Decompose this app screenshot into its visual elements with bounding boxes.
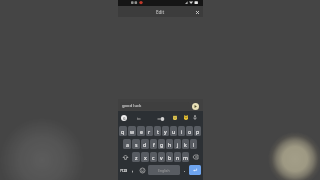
button[interactable]: Send	[192, 103, 199, 110]
staticText: m	[183, 154, 188, 161]
staticText: w	[130, 128, 135, 135]
button[interactable]: Emoji	[184, 115, 188, 120]
button[interactable]: f	[150, 139, 157, 149]
staticText: a	[126, 141, 129, 148]
staticText: f	[153, 141, 155, 148]
staticText: c	[152, 154, 155, 161]
button[interactable]: q	[119, 126, 127, 136]
staticText: i	[181, 128, 183, 135]
button[interactable]: Voice input	[193, 115, 197, 120]
button[interactable]: r	[146, 126, 153, 136]
button[interactable]: g	[158, 139, 165, 149]
staticText: g	[160, 141, 164, 148]
button[interactable]: Close	[192, 7, 202, 17]
staticText: G	[123, 116, 126, 121]
staticText: d	[143, 141, 147, 148]
button[interactable]: l	[190, 139, 197, 149]
staticText: u	[172, 128, 176, 135]
button[interactable]: e	[137, 126, 145, 136]
staticText: v	[160, 154, 163, 161]
staticText: o	[188, 128, 192, 135]
button[interactable]: h	[166, 139, 173, 149]
staticText: s	[135, 141, 138, 148]
button[interactable]: Emoji keyboard	[137, 165, 147, 175]
staticText: n	[176, 154, 180, 161]
staticText: y	[164, 128, 167, 135]
staticText: Edit	[156, 9, 165, 15]
staticText: z	[135, 154, 138, 161]
button[interactable]: w	[128, 126, 136, 136]
button[interactable]: o	[186, 126, 193, 136]
staticText: t	[157, 128, 159, 135]
staticText: x	[144, 154, 147, 161]
staticText: good luck	[122, 103, 142, 109]
button[interactable]: Shift	[119, 152, 131, 162]
button[interactable]: Backspace	[190, 152, 201, 162]
button[interactable]: t	[154, 126, 161, 136]
button[interactable]: k	[182, 139, 189, 149]
staticText: to	[137, 116, 141, 121]
button[interactable]: v	[158, 152, 165, 162]
staticText: l	[193, 141, 195, 148]
button[interactable]: Period	[181, 165, 188, 175]
staticText: r	[148, 128, 151, 135]
button[interactable]: good luck	[120, 102, 190, 110]
staticText: English	[158, 168, 170, 173]
button[interactable]: d	[141, 139, 149, 149]
button[interactable]: p	[194, 126, 201, 136]
button[interactable]: n	[174, 152, 181, 162]
button[interactable]: y	[162, 126, 169, 136]
button[interactable]: ?123	[119, 165, 129, 175]
button[interactable]: Google	[121, 115, 127, 121]
button[interactable]: Settings	[157, 116, 165, 122]
button[interactable]: c	[150, 152, 157, 162]
staticText: b	[168, 154, 172, 161]
button[interactable]: m	[182, 152, 189, 162]
staticText: q	[121, 128, 125, 135]
button[interactable]: u	[170, 126, 177, 136]
staticText: ?123	[120, 168, 128, 173]
button[interactable]: x	[141, 152, 149, 162]
staticText: e	[140, 128, 143, 135]
staticText: j	[177, 141, 179, 148]
button[interactable]: Stickers	[173, 115, 177, 120]
button[interactable]: i	[178, 126, 185, 136]
staticText: h	[168, 141, 172, 148]
button[interactable]: Enter	[189, 165, 201, 175]
staticText: k	[184, 141, 187, 148]
button[interactable]: English	[148, 165, 180, 175]
staticText: ,	[132, 167, 134, 173]
button[interactable]: b	[166, 152, 173, 162]
button[interactable]: z	[132, 152, 140, 162]
button[interactable]: Comma	[130, 165, 136, 175]
button[interactable]: a	[123, 139, 131, 149]
staticText: .	[184, 167, 186, 173]
button[interactable]: j	[174, 139, 181, 149]
button[interactable]: s	[132, 139, 140, 149]
staticText: p	[196, 128, 200, 135]
